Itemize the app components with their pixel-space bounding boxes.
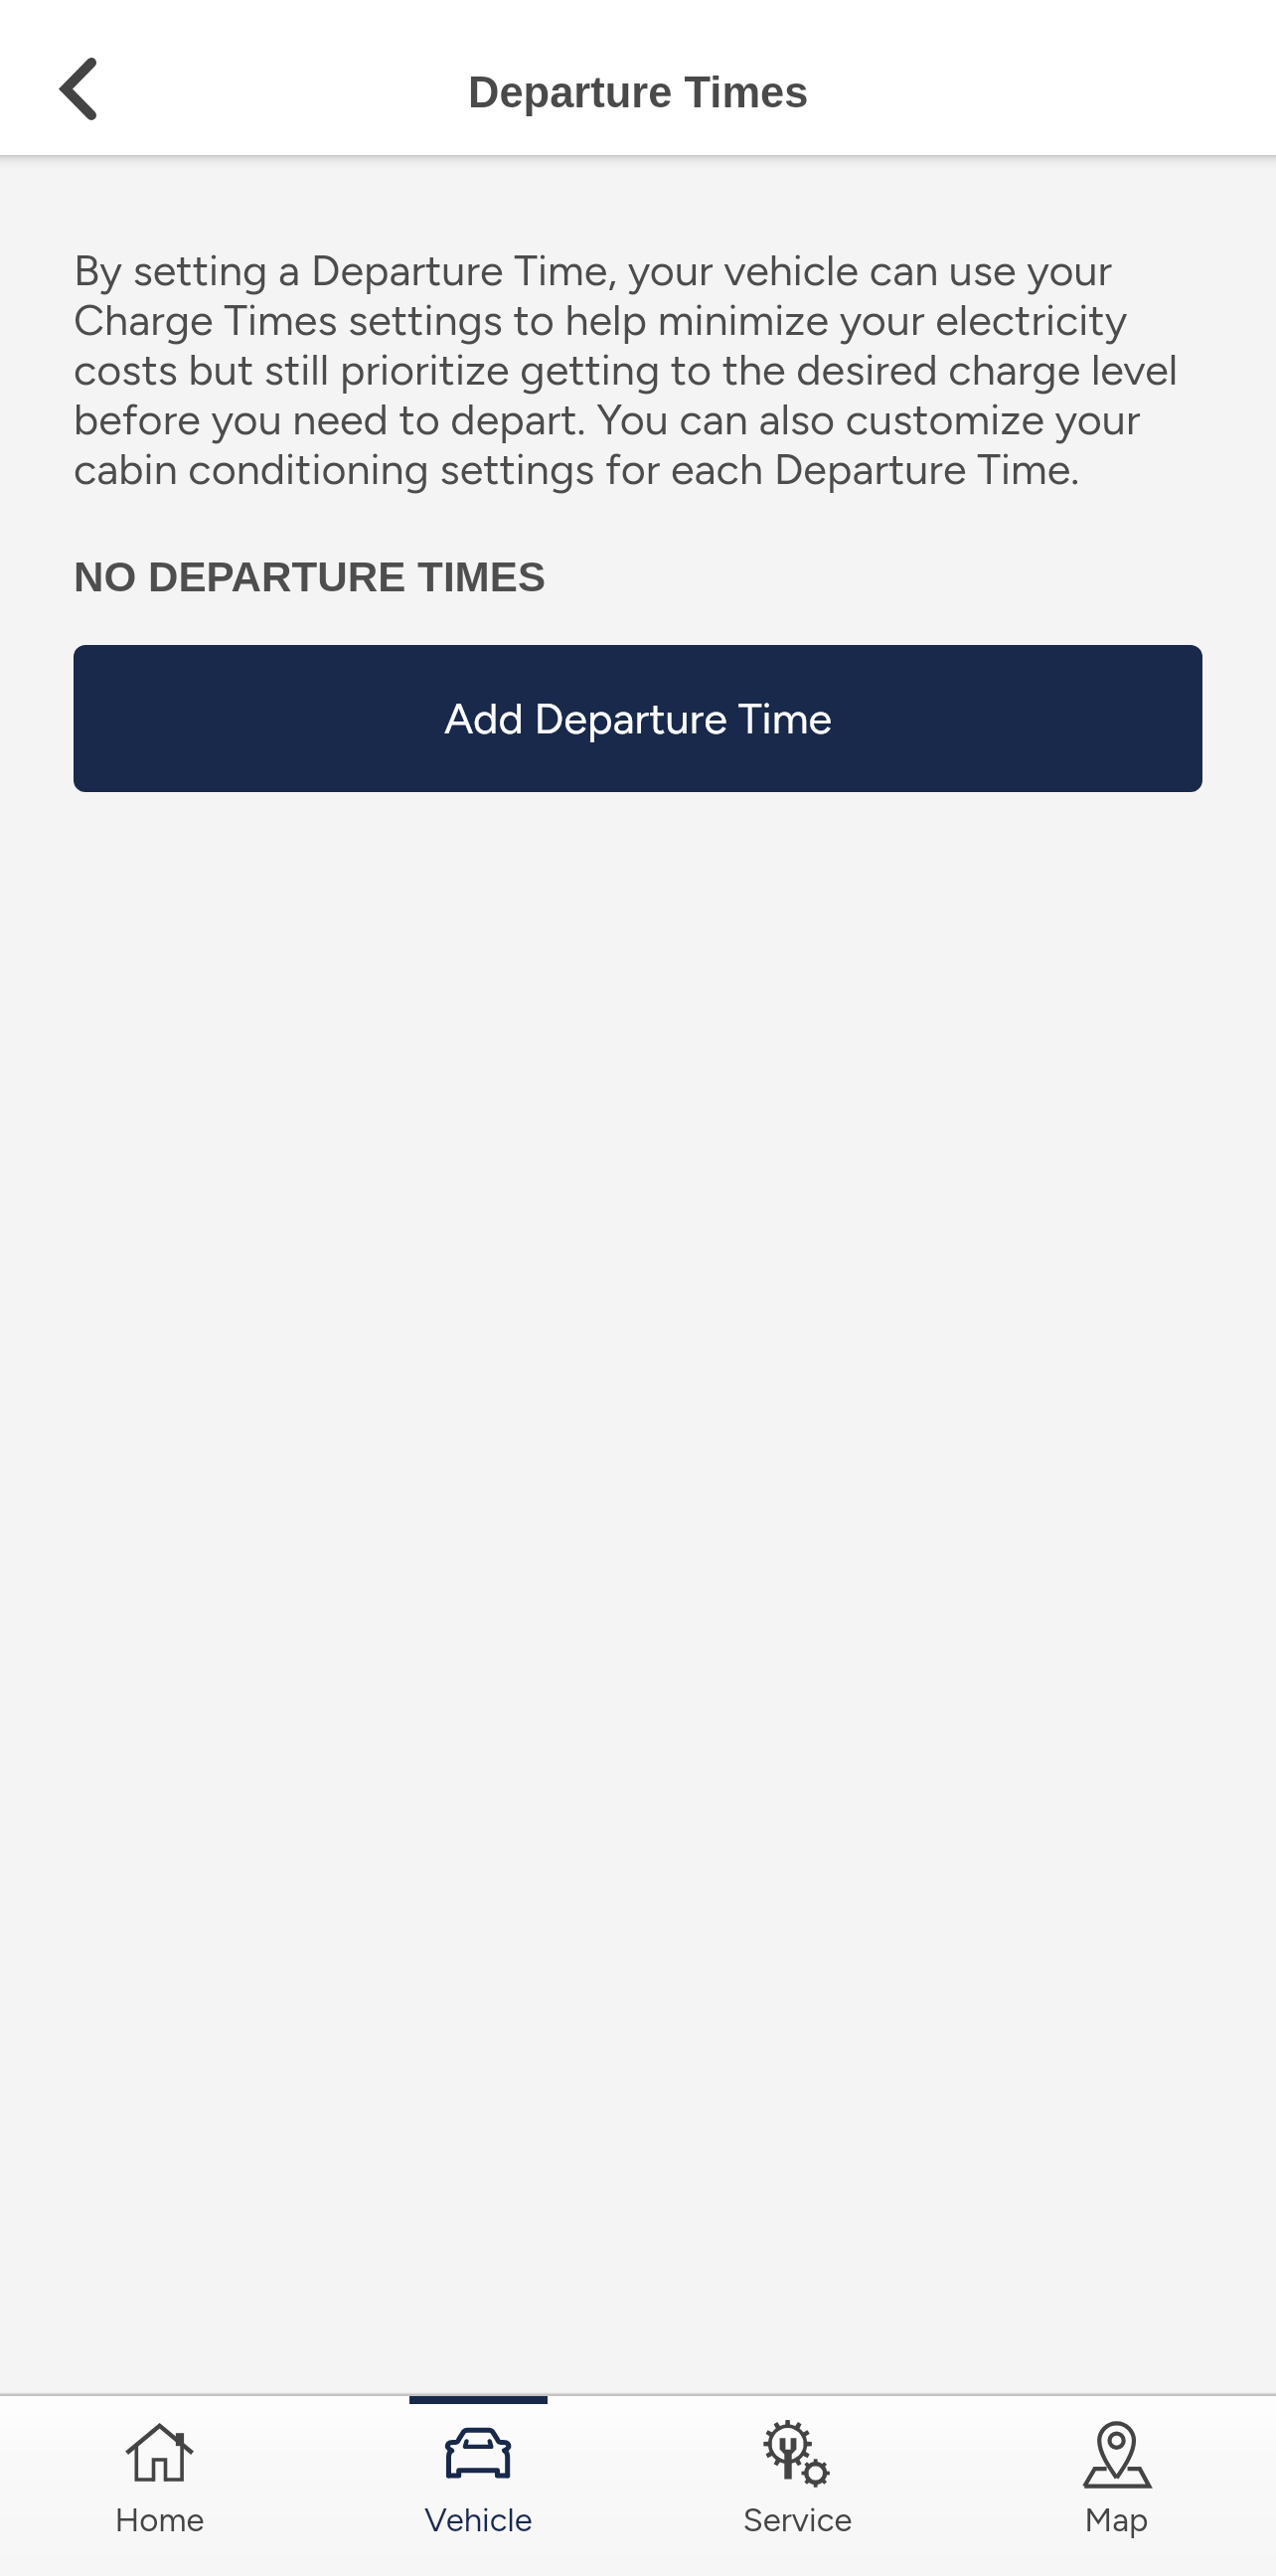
button[interactable]: Vehicle [319, 2396, 638, 2540]
staticText: NO DEPARTURE TIMES [74, 554, 547, 600]
button[interactable]: Home [0, 2396, 319, 2540]
staticText: Departure Times [468, 69, 809, 117]
staticText: By setting a Departure Time, your vehicl… [74, 244, 1202, 494]
button[interactable]: Service [638, 2396, 957, 2540]
button[interactable]: Back [20, 43, 111, 134]
staticText: Home [114, 2500, 205, 2540]
staticText: Service [742, 2500, 853, 2540]
button[interactable]: Map [957, 2396, 1276, 2540]
staticText: Vehicle [424, 2500, 533, 2540]
staticText: Map [1084, 2500, 1149, 2540]
staticText: Add Departure Time [444, 693, 833, 744]
button[interactable]: Add Departure Time [74, 645, 1202, 792]
